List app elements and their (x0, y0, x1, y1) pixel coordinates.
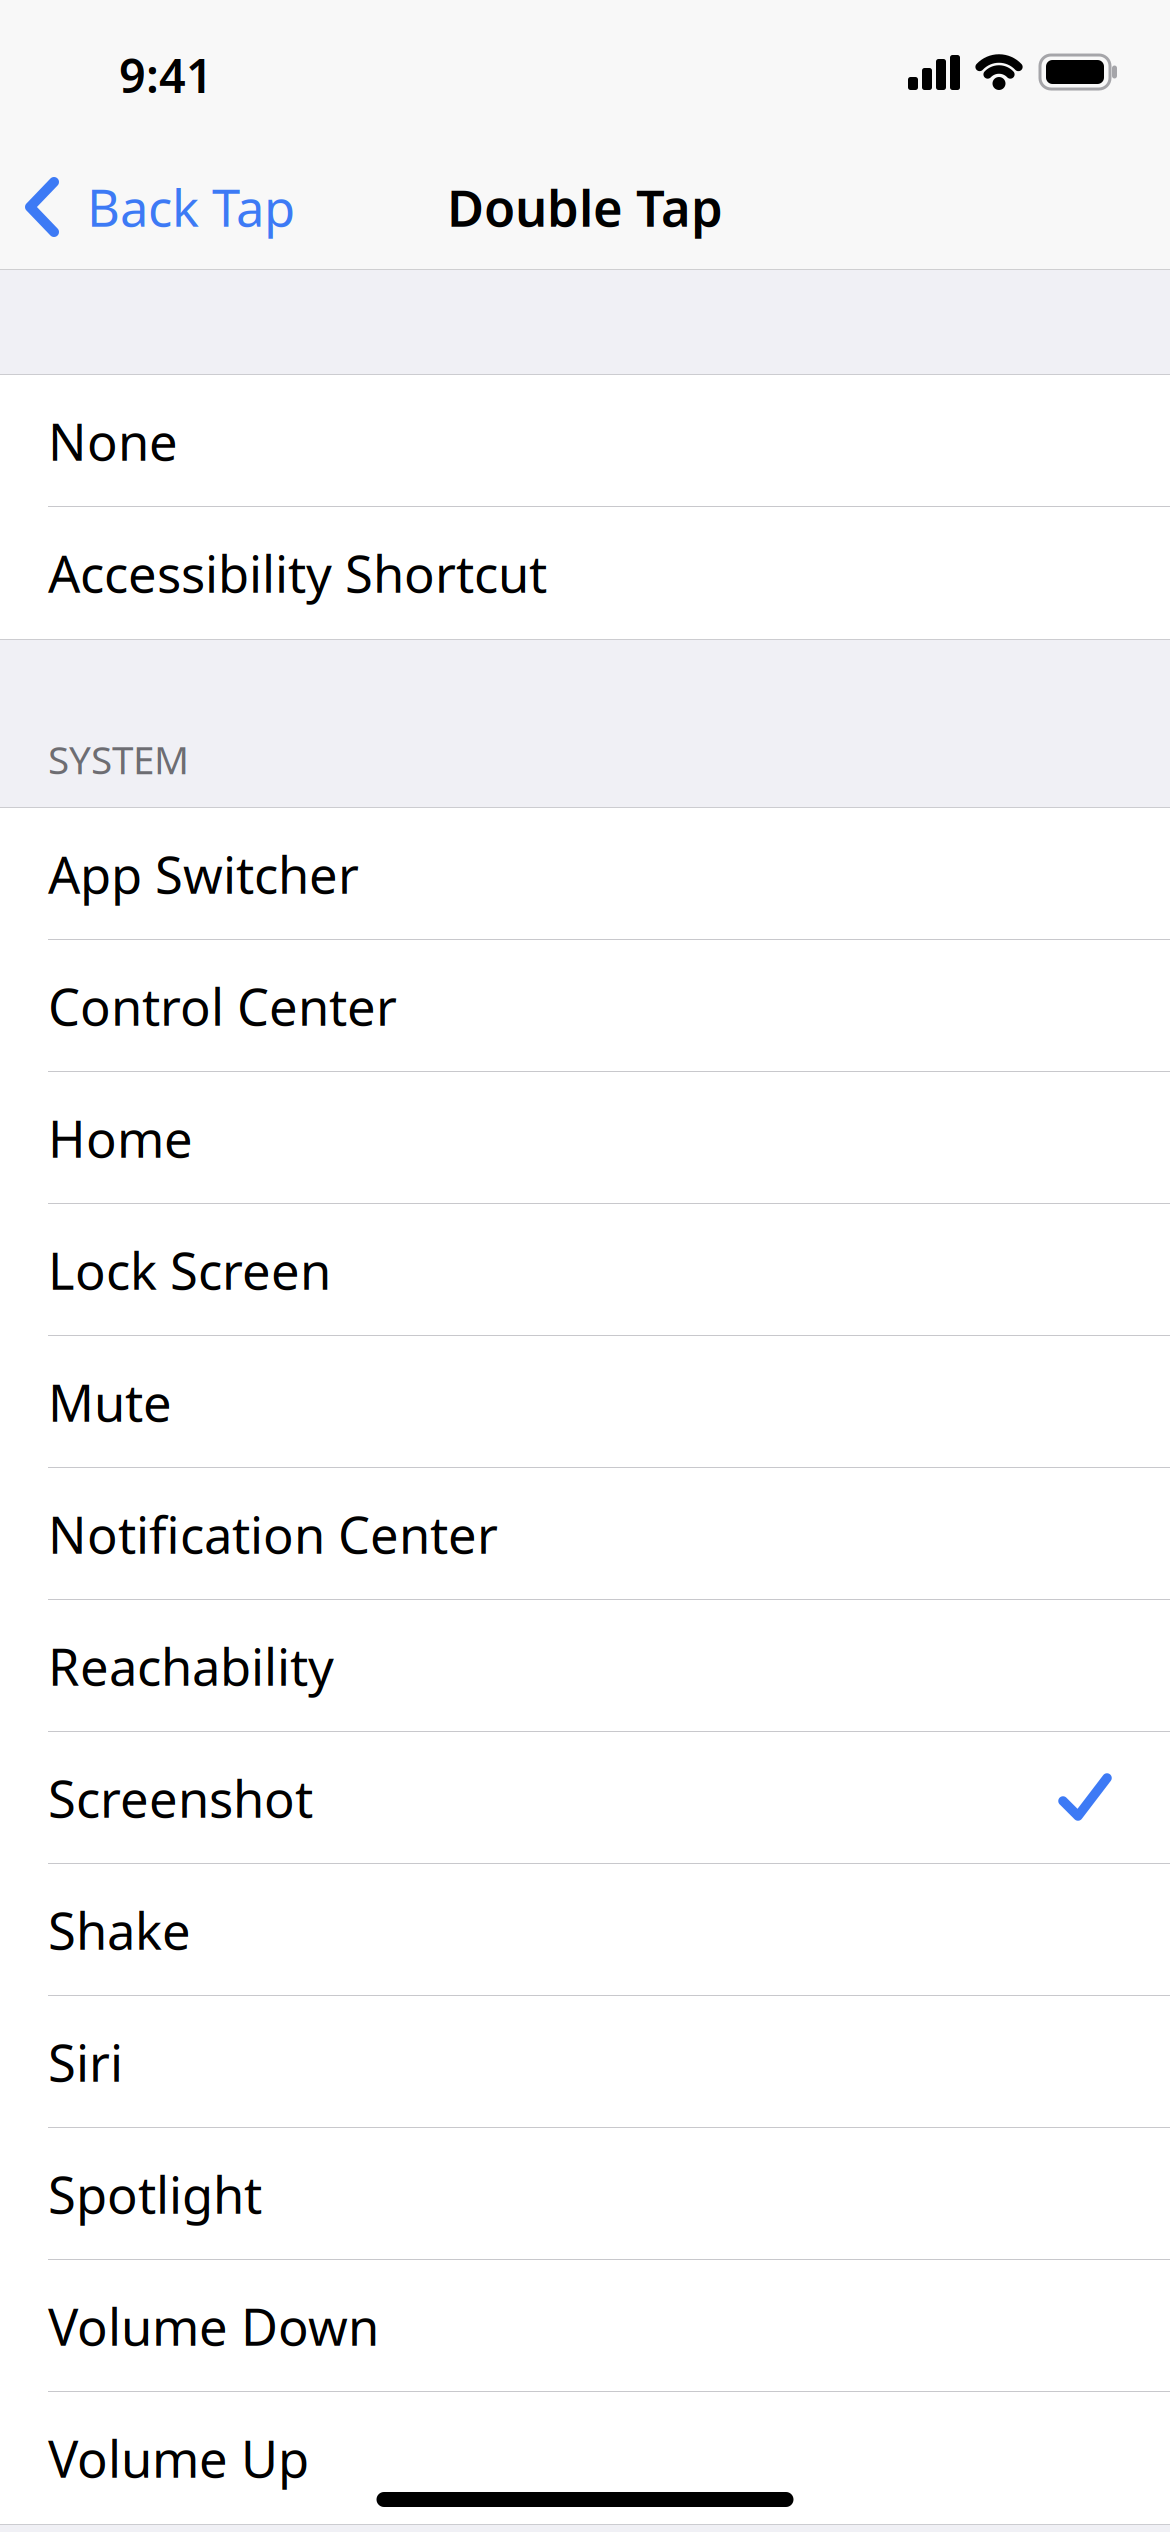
staticText: Notification Center (48, 1500, 498, 1568)
staticText: Accessibility Shortcut (48, 539, 547, 607)
staticText: SYSTEM (48, 734, 189, 785)
button[interactable]: Mute (0, 1336, 1170, 1468)
staticText: Shake (48, 1896, 191, 1964)
button[interactable]: Volume Down (0, 2260, 1170, 2392)
button[interactable]: Shake (0, 1864, 1170, 1996)
staticText: Double Tap (447, 173, 723, 241)
button[interactable]: Home (0, 1072, 1170, 1204)
button[interactable]: Volume Up (0, 2392, 1170, 2524)
staticText: 9:41 (119, 44, 213, 106)
button[interactable]: Lock Screen (0, 1204, 1170, 1336)
staticText: Home (48, 1104, 193, 1172)
button[interactable]: Reachability (0, 1600, 1170, 1732)
staticText: Control Center (48, 972, 397, 1040)
button[interactable]: Spotlight (0, 2128, 1170, 2260)
button[interactable]: Siri (0, 1996, 1170, 2128)
staticText: Siri (48, 2028, 123, 2096)
staticText: Back Tap (87, 173, 295, 241)
staticText: Screenshot (48, 1764, 313, 1832)
button[interactable]: None (0, 375, 1170, 507)
staticText: Volume Down (48, 2292, 379, 2360)
staticText: Volume Up (48, 2424, 309, 2492)
button[interactable]: Control Center (0, 940, 1170, 1072)
staticText: Reachability (48, 1632, 334, 1700)
button[interactable]: Screenshot (0, 1732, 1170, 1864)
staticText: None (48, 407, 178, 475)
button[interactable]: Accessibility Shortcut (0, 507, 1170, 639)
button[interactable]: App Switcher (0, 808, 1170, 940)
staticText: Lock Screen (48, 1236, 331, 1304)
button[interactable]: Back Tap (0, 173, 295, 241)
button[interactable]: Notification Center (0, 1468, 1170, 1600)
staticText: Mute (48, 1368, 172, 1436)
staticText: App Switcher (48, 840, 359, 908)
staticText: Spotlight (48, 2160, 262, 2228)
